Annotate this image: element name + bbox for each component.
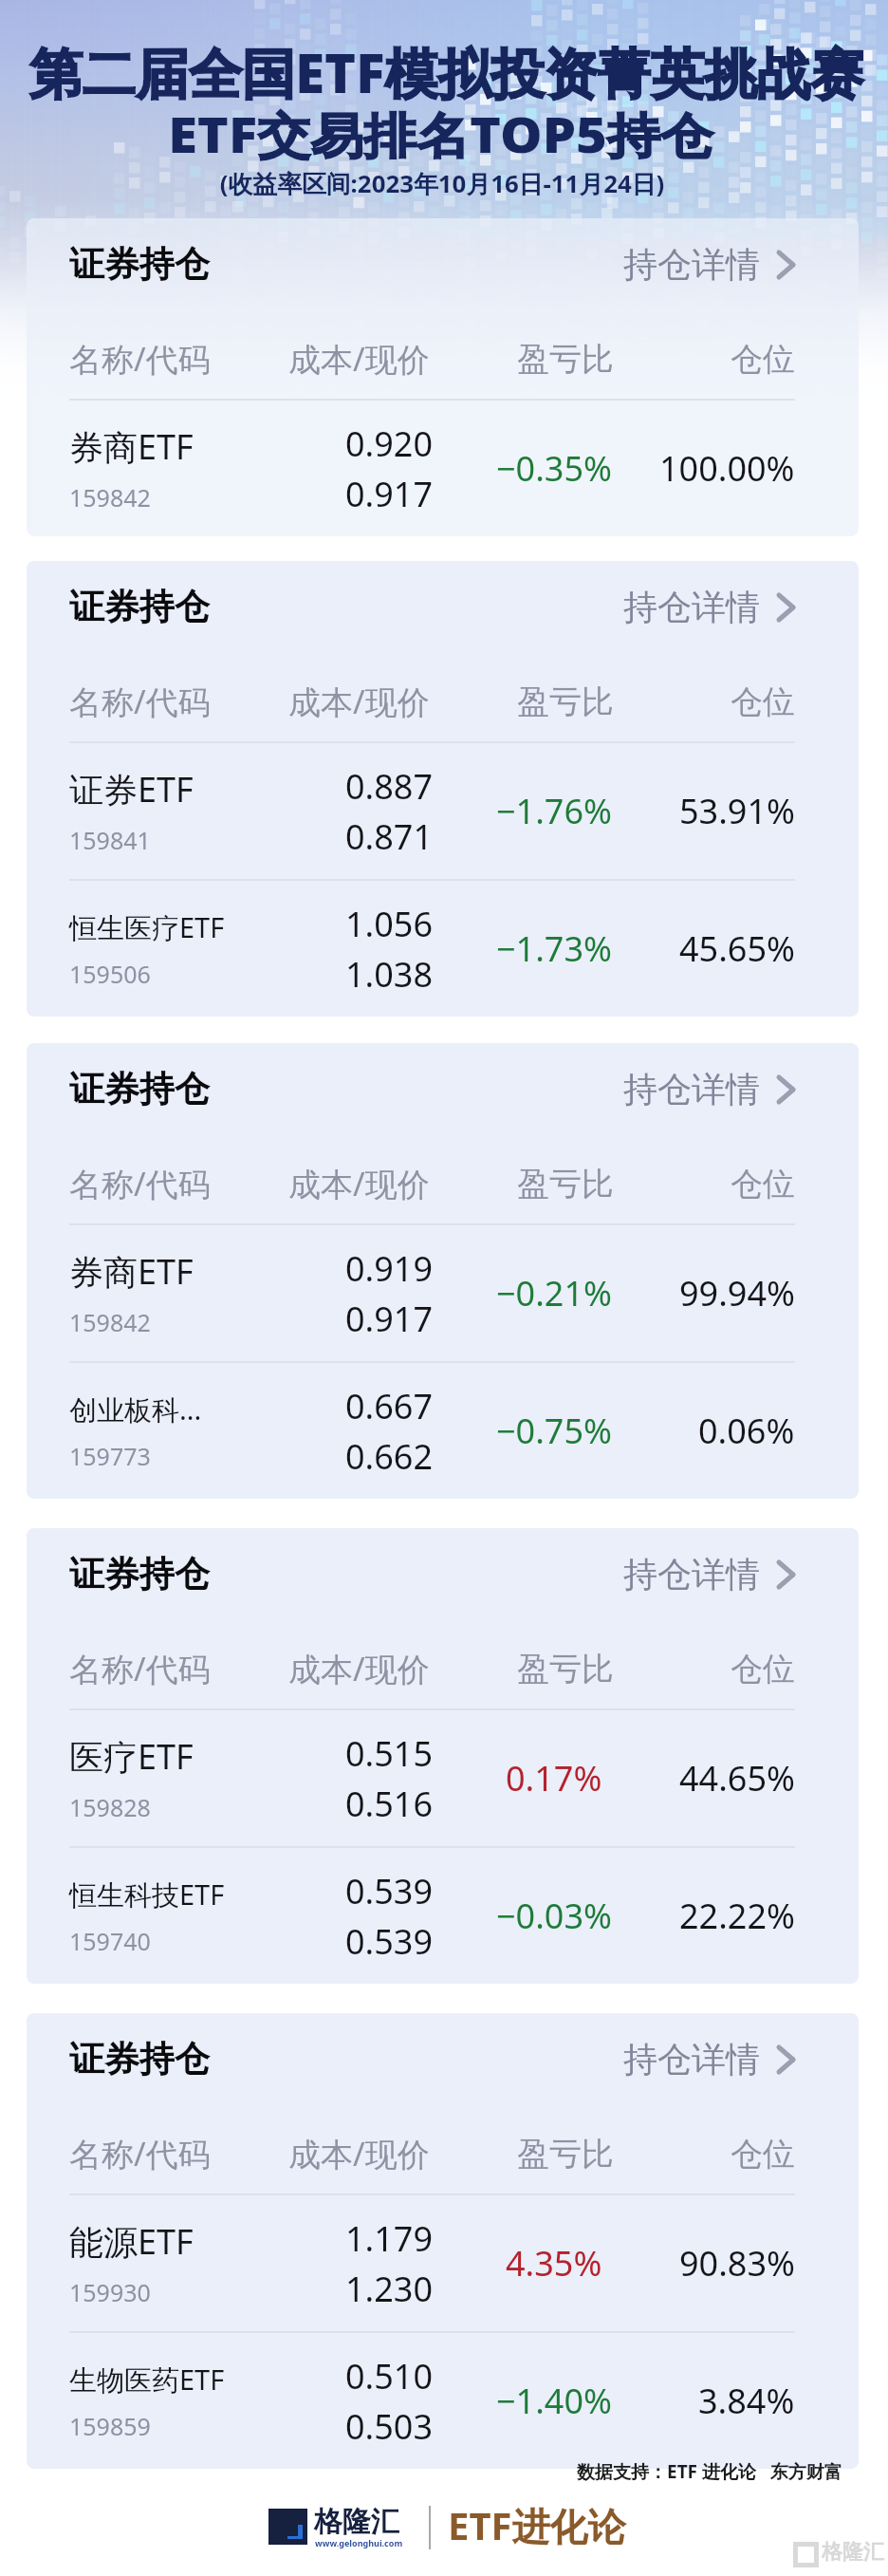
staticText: 159842 xyxy=(69,481,151,513)
staticText: 0.539 xyxy=(345,1918,434,1965)
staticText: 成本/现价 xyxy=(288,337,430,381)
staticText: 盈亏比 xyxy=(517,1164,614,1204)
staticText: 持仓详情 xyxy=(623,1068,760,1111)
staticText: 能源ETF xyxy=(69,2218,194,2265)
staticText: 医疗ETF xyxy=(69,1733,194,1780)
staticText: 159828 xyxy=(69,1791,151,1823)
staticText: −0.03% xyxy=(496,1893,612,1939)
other: 持仓详情 xyxy=(777,592,795,623)
staticText: 1.038 xyxy=(345,951,434,998)
button[interactable]: 创业板科... xyxy=(27,1363,859,1499)
staticText: 成本/现价 xyxy=(288,680,430,723)
staticText: 券商ETF xyxy=(69,1248,194,1295)
staticText: 0.510 xyxy=(345,2353,434,2399)
staticText: 0.503 xyxy=(345,2403,434,2450)
staticText: −0.75% xyxy=(496,1408,612,1454)
staticText: 格隆汇 xyxy=(822,2539,884,2566)
staticText: 名称/代码 xyxy=(69,1162,211,1205)
staticText: 证券持仓 xyxy=(69,2037,210,2081)
staticText: 盈亏比 xyxy=(517,1649,614,1689)
staticText: 创业板科... xyxy=(69,1391,202,1428)
staticText: 0.17% xyxy=(506,1755,602,1801)
button[interactable]: 生物医药ETF xyxy=(27,2333,859,2469)
other: 持仓详情 xyxy=(777,1559,795,1590)
staticText: −0.21% xyxy=(496,1270,612,1316)
staticText: 0.515 xyxy=(345,1730,434,1777)
staticText: 0.871 xyxy=(345,813,434,860)
staticText: (收益率区间:2023年10月16日-11月24日) xyxy=(220,167,665,200)
staticText: −1.73% xyxy=(496,925,612,972)
staticText: 证券持仓 xyxy=(69,1067,210,1111)
other: 持仓详情 xyxy=(777,2044,795,2075)
staticText: 证券持仓 xyxy=(69,1552,210,1596)
staticText: 恒生科技ETF xyxy=(69,1876,225,1913)
staticText: 1.056 xyxy=(345,901,434,947)
staticText: 成本/现价 xyxy=(288,2132,430,2175)
button[interactable]: 证券持仓 xyxy=(27,2013,859,2105)
staticText: 0.516 xyxy=(345,1781,434,1827)
staticText: 仓位 xyxy=(731,1164,795,1204)
staticText: 0.920 xyxy=(345,420,434,467)
staticText: 恒生医疗ETF xyxy=(69,908,225,946)
staticText: 159930 xyxy=(69,2276,151,2308)
staticText: 数据支持：ETF 进化论 东方财富 xyxy=(577,2459,842,2484)
staticText: 159506 xyxy=(69,958,151,990)
button[interactable]: 能源ETF xyxy=(27,2195,859,2331)
staticText: www.gelonghui.com xyxy=(315,2537,403,2548)
staticText: 生物医药ETF xyxy=(69,2361,225,2399)
staticText: 99.94% xyxy=(679,1270,795,1316)
staticText: 盈亏比 xyxy=(517,2134,614,2175)
staticText: 证券ETF xyxy=(69,766,194,812)
staticText: 53.91% xyxy=(679,788,795,834)
staticText: 159773 xyxy=(69,1440,151,1472)
staticText: 0.887 xyxy=(345,763,434,810)
staticText: 仓位 xyxy=(731,681,795,722)
staticText: 0.667 xyxy=(345,1383,434,1429)
button[interactable]: 医疗ETF xyxy=(27,1710,859,1846)
button[interactable]: 券商ETF xyxy=(27,401,859,536)
staticText: 持仓详情 xyxy=(623,2038,760,2081)
button[interactable]: 券商ETF xyxy=(27,1225,859,1361)
staticText: 0.917 xyxy=(345,1296,434,1342)
staticText: ETF交易排名TOP5持仓 xyxy=(168,101,714,167)
button[interactable]: 恒生科技ETF xyxy=(27,1848,859,1984)
staticText: 0.06% xyxy=(698,1408,795,1454)
staticText: 名称/代码 xyxy=(69,337,211,381)
staticText: 1.179 xyxy=(345,2215,434,2262)
staticText: 券商ETF xyxy=(69,423,194,470)
staticText: 第二届全国ETF模拟投资菁英挑战赛 xyxy=(29,35,864,108)
staticText: 44.65% xyxy=(679,1755,795,1801)
staticText: 3.84% xyxy=(698,2378,795,2424)
button[interactable]: 证券持仓 xyxy=(27,1528,859,1620)
staticText: 4.35% xyxy=(506,2240,602,2287)
staticText: 名称/代码 xyxy=(69,2132,211,2175)
staticText: 159842 xyxy=(69,1306,151,1338)
staticText: 名称/代码 xyxy=(69,1647,211,1690)
staticText: −0.35% xyxy=(496,445,612,492)
staticText: 证券持仓 xyxy=(69,585,210,629)
staticText: 成本/现价 xyxy=(288,1162,430,1205)
button[interactable]: 证券持仓 xyxy=(27,218,859,310)
staticText: 名称/代码 xyxy=(69,680,211,723)
staticText: 1.230 xyxy=(345,2266,434,2312)
staticText: 成本/现价 xyxy=(288,1647,430,1690)
staticText: 仓位 xyxy=(731,2134,795,2175)
staticText: 证券持仓 xyxy=(69,242,210,287)
other: 持仓详情 xyxy=(777,250,795,280)
staticText: 22.22% xyxy=(679,1893,795,1939)
button[interactable]: 恒生医疗ETF xyxy=(27,881,859,1017)
staticText: 持仓详情 xyxy=(623,586,760,628)
staticText: 0.919 xyxy=(345,1245,434,1292)
button[interactable]: 证券ETF xyxy=(27,743,859,879)
staticText: −1.76% xyxy=(496,788,612,834)
staticText: 0.662 xyxy=(345,1433,434,1480)
staticText: 仓位 xyxy=(731,339,795,380)
staticText: 盈亏比 xyxy=(517,339,614,380)
staticText: 45.65% xyxy=(679,925,795,972)
button[interactable]: 证券持仓 xyxy=(27,561,859,653)
staticText: 100.00% xyxy=(659,445,795,492)
button[interactable]: 证券持仓 xyxy=(27,1043,859,1135)
staticText: 0.539 xyxy=(345,1868,434,1914)
other: 持仓详情 xyxy=(777,1074,795,1105)
staticText: ETF进化论 xyxy=(448,2499,626,2551)
